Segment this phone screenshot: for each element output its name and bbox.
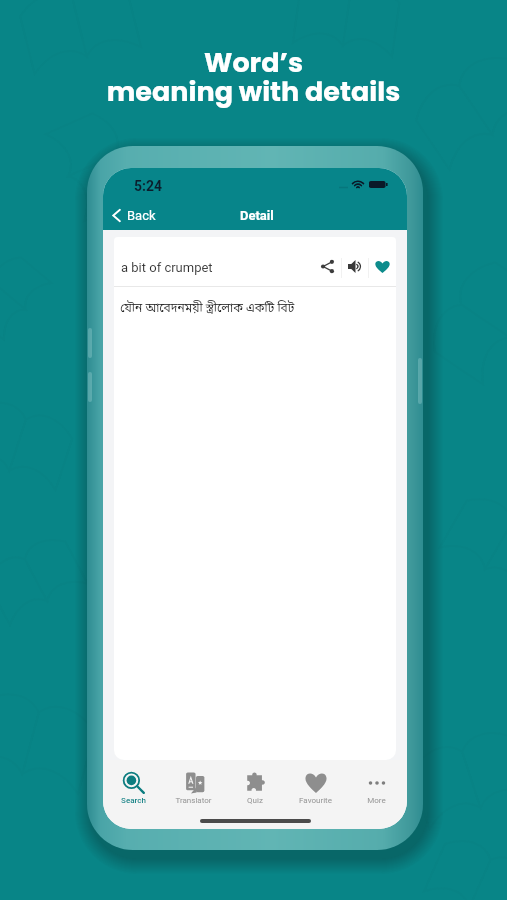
button[interactable]: Search bbox=[103, 771, 163, 805]
button[interactable]: Share bbox=[314, 251, 341, 281]
staticText: Detail bbox=[240, 208, 274, 223]
button[interactable]: Translator bbox=[163, 771, 224, 805]
button[interactable]: Favourite bbox=[285, 771, 346, 805]
button[interactable]: More bbox=[346, 771, 407, 805]
staticText: Quiz bbox=[247, 796, 263, 805]
button[interactable]: Favourite bbox=[369, 251, 395, 281]
staticText: যৌন আবেদনময়ী স্ত্রীলোক একটি বিট bbox=[120, 301, 295, 317]
staticText: Word’s meaning with details bbox=[0, 44, 507, 110]
staticText: a bit of crumpet bbox=[121, 260, 213, 275]
button[interactable]: Pronounce bbox=[342, 251, 368, 281]
staticText: Back bbox=[127, 208, 156, 223]
staticText: Favourite bbox=[299, 796, 332, 805]
staticText: Search bbox=[121, 796, 146, 805]
staticText: Translator bbox=[175, 796, 212, 805]
staticText: 5:24 bbox=[134, 178, 163, 194]
staticText: More bbox=[367, 796, 386, 805]
button[interactable]: Back bbox=[103, 205, 164, 226]
button[interactable]: Quiz bbox=[224, 771, 285, 805]
